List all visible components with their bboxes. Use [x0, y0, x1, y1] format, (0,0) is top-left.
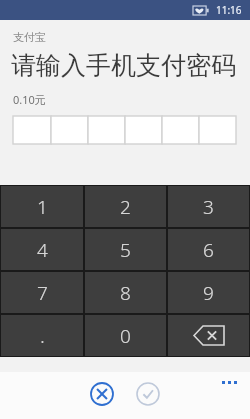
button[interactable]: More options	[214, 372, 244, 392]
staticText: 0	[120, 323, 131, 349]
button[interactable]: Backspace	[168, 315, 249, 356]
button[interactable]	[125, 116, 162, 144]
button[interactable]: 3	[168, 186, 249, 227]
button[interactable]: 1	[1, 186, 83, 227]
staticText: 7	[37, 280, 48, 306]
button[interactable]: 5	[85, 229, 166, 270]
button[interactable]: 9	[168, 272, 249, 313]
staticText: 1	[37, 194, 48, 220]
staticText: 2	[120, 194, 131, 220]
button[interactable]: Cancel	[86, 378, 118, 410]
button[interactable]: .	[1, 315, 83, 356]
button[interactable]: 8	[85, 272, 166, 313]
staticText: 支付宝	[13, 30, 46, 44]
staticText: .	[40, 322, 45, 349]
staticText: 3	[203, 194, 214, 220]
staticText: 请输入手机支付密码	[11, 50, 236, 81]
staticText: 8	[120, 280, 131, 306]
button[interactable]: 7	[1, 272, 83, 313]
button[interactable]: Confirm	[132, 378, 164, 410]
button[interactable]	[199, 116, 236, 144]
staticText: 6	[203, 237, 214, 263]
staticText: 4	[37, 237, 48, 263]
button[interactable]: 0	[85, 315, 166, 356]
staticText: 11:16	[216, 3, 242, 17]
button[interactable]	[88, 116, 125, 144]
button[interactable]	[13, 116, 51, 144]
button[interactable]	[162, 116, 199, 144]
button[interactable]	[51, 116, 88, 144]
staticText: 5	[120, 237, 131, 263]
button[interactable]: 2	[85, 186, 166, 227]
staticText: 9	[203, 280, 214, 306]
button[interactable]: 6	[168, 229, 249, 270]
button[interactable]: 4	[1, 229, 83, 270]
staticText: 0.10元	[13, 92, 46, 107]
